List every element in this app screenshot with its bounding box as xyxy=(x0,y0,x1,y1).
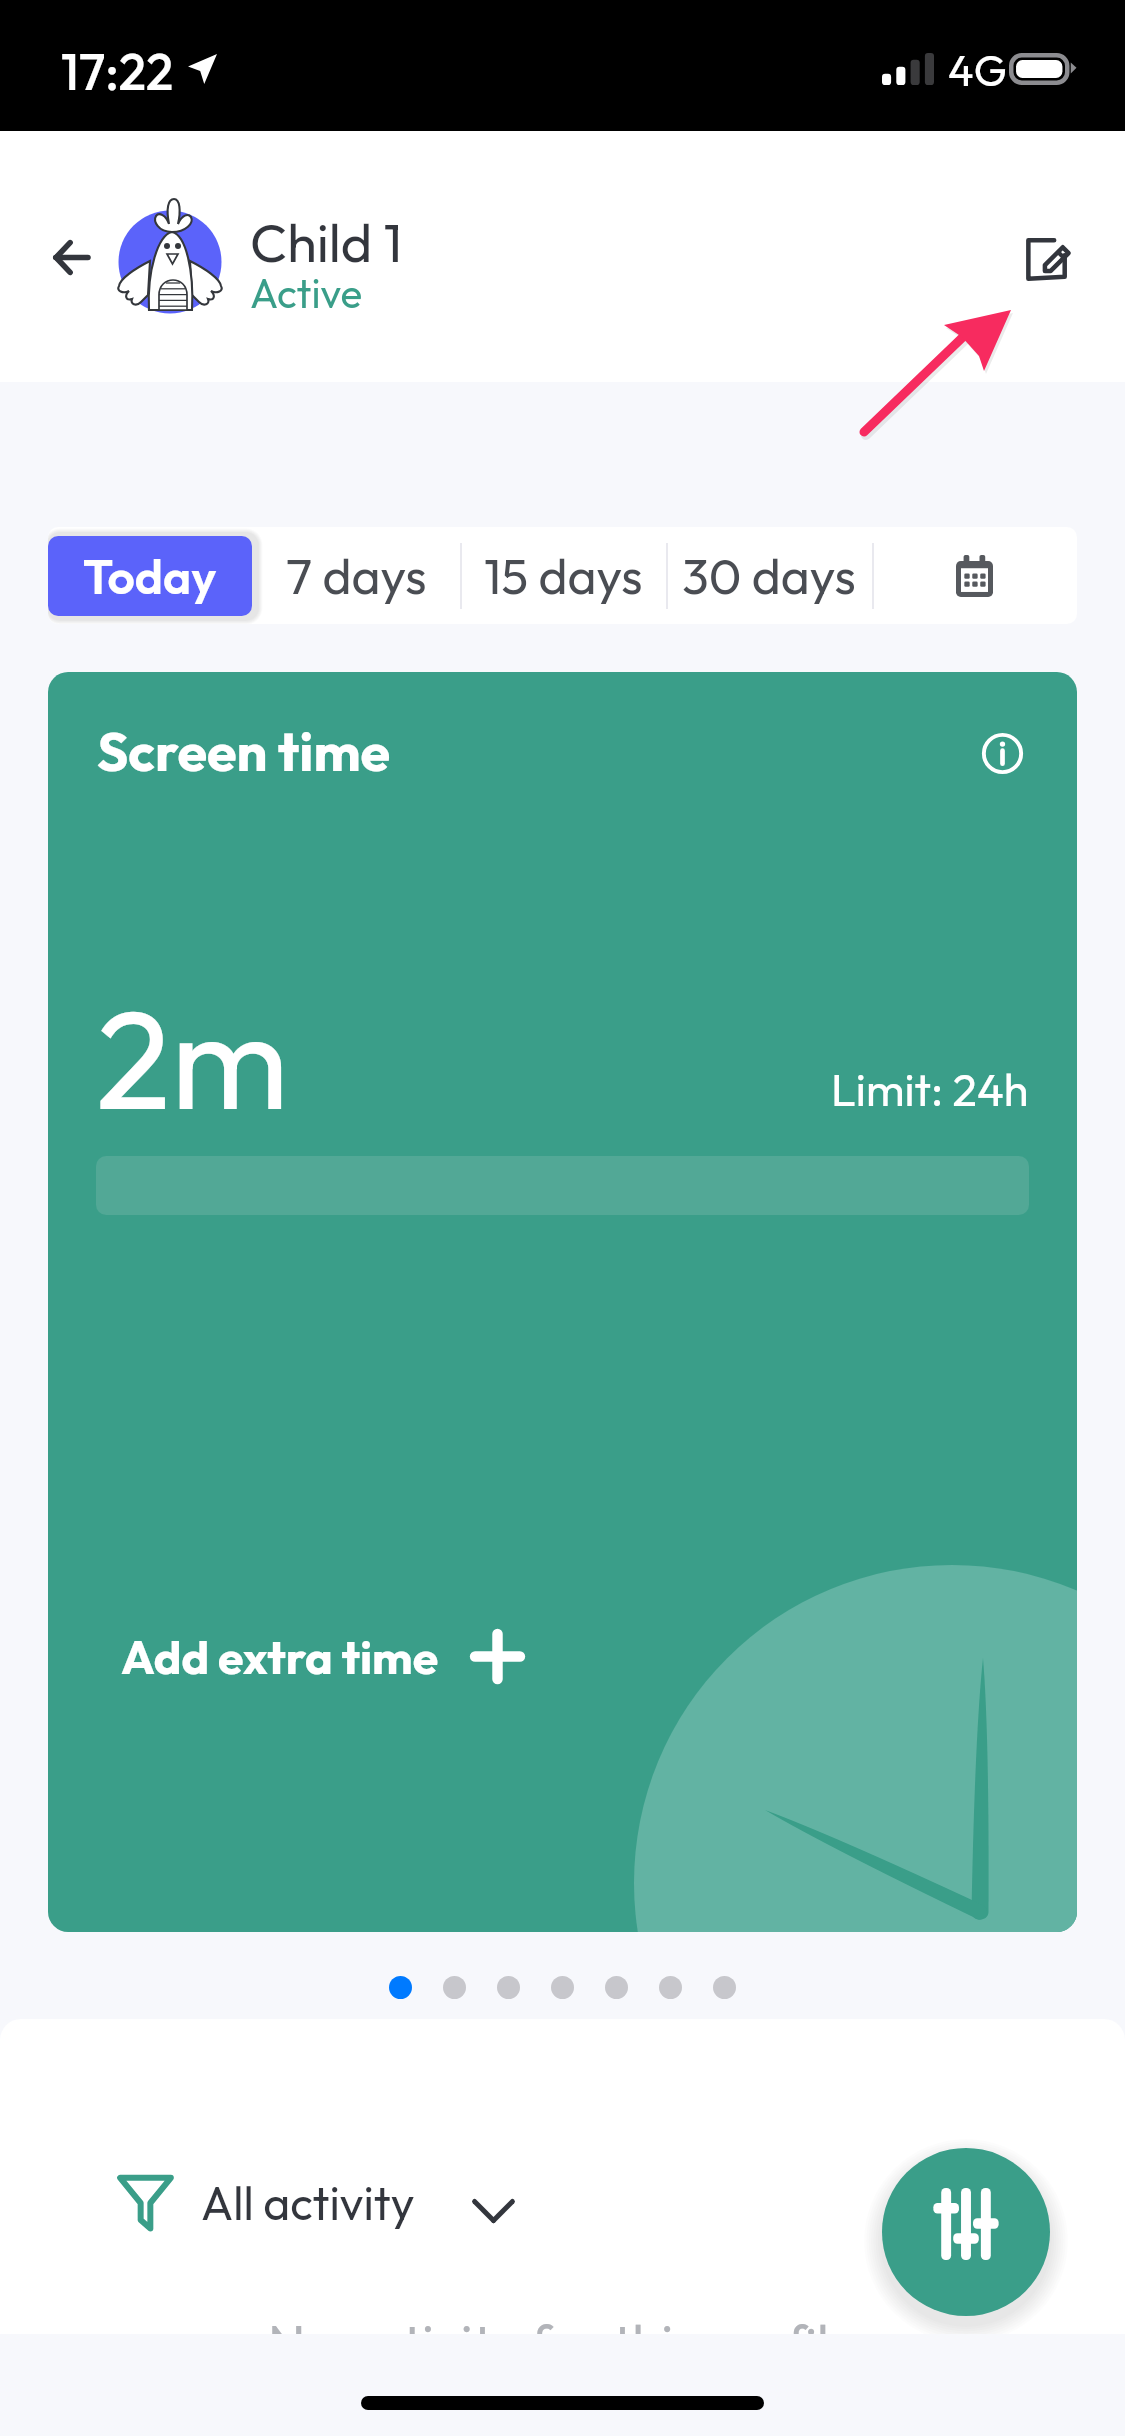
staticText: Add extra time xyxy=(121,1627,439,1686)
staticText: 4G xyxy=(948,43,1007,97)
staticText: 30 days xyxy=(682,544,856,607)
button[interactable]: Back xyxy=(5,191,137,323)
button[interactable]: 7 days xyxy=(252,527,460,624)
staticText: 7 days xyxy=(286,544,427,607)
staticText: All activity xyxy=(201,2174,415,2232)
staticText: Screen time xyxy=(97,717,391,785)
button[interactable]: Edit profile xyxy=(1026,238,1069,281)
staticText: Active xyxy=(250,267,363,318)
button[interactable]: Pick date xyxy=(872,527,1077,624)
staticText: 17:22 xyxy=(61,40,174,104)
button[interactable]: Today xyxy=(48,536,252,616)
button[interactable]: All activity xyxy=(117,2174,515,2232)
staticText: 2m xyxy=(96,971,289,1145)
staticText: Today xyxy=(83,546,217,606)
staticText: Child 1 xyxy=(250,208,403,276)
staticText: Limit: 24h xyxy=(831,1061,1029,1118)
button[interactable]: Filter settings xyxy=(882,2148,1050,2316)
button[interactable]: 15 days xyxy=(460,527,666,624)
button[interactable]: 30 days xyxy=(666,527,872,624)
button[interactable]: Add extra time xyxy=(121,1627,523,1686)
staticText: No activity for this profile xyxy=(268,2310,857,2334)
staticText: 15 days xyxy=(484,544,643,607)
button[interactable]: Screen time xyxy=(48,672,1077,1932)
button[interactable]: Info xyxy=(978,729,1026,777)
